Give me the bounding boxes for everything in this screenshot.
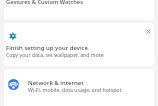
staticText: Wi-Fi, mobile, data usage, and hotspot (28, 86, 122, 93)
staticText: Gestures & Custom Watches (6, 0, 83, 6)
button[interactable]: Network & internet (4, 69, 154, 106)
staticText: Network & internet (28, 79, 84, 87)
button[interactable]: Dismiss (143, 26, 153, 36)
button[interactable]: Finish setting up your device (4, 23, 154, 66)
staticText: Copy your data, set wallpaper, and more (6, 51, 104, 58)
staticText: Finish setting up your device (6, 44, 88, 52)
button[interactable]: Gestures & Custom Watches (4, 0, 154, 20)
